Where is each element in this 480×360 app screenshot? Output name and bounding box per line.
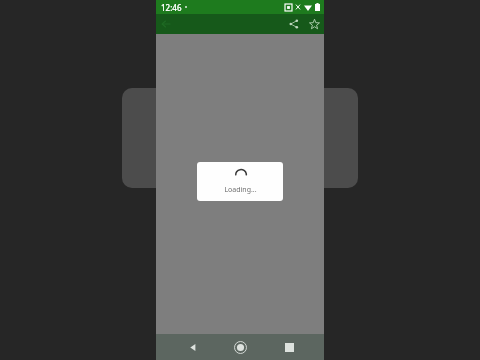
- button[interactable]: Share: [284, 14, 304, 34]
- button[interactable]: Favorite: [304, 14, 324, 34]
- staticText: 12:46: [161, 2, 182, 13]
- staticText: Loading...: [224, 185, 257, 195]
- button[interactable]: Back: [179, 334, 205, 360]
- button[interactable]: Recent apps: [276, 334, 302, 360]
- button[interactable]: Home: [227, 334, 253, 360]
